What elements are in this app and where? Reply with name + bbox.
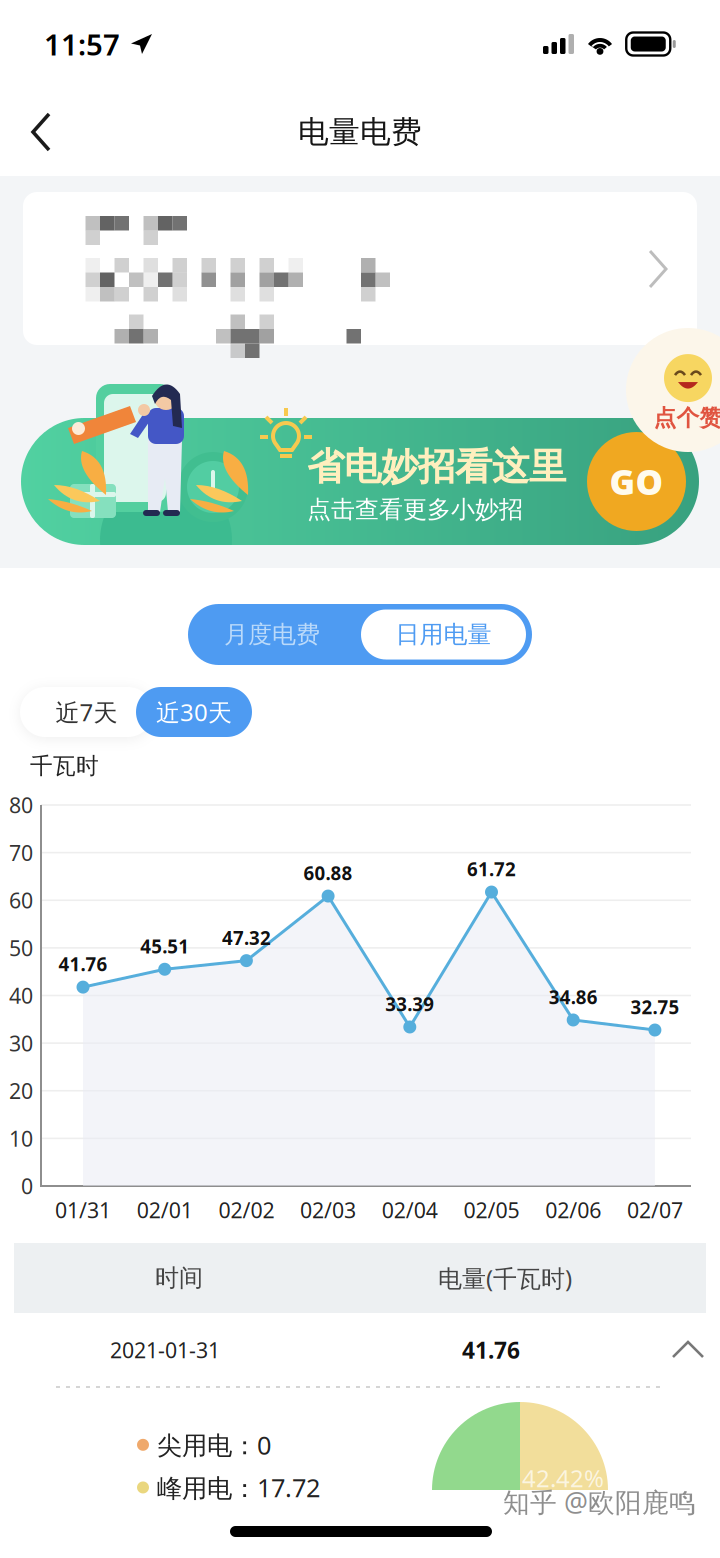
- staticText: 时间: [155, 1263, 203, 1293]
- staticText: 33.39: [385, 992, 434, 1016]
- staticText: 0: [21, 1172, 33, 1200]
- staticText: 电量电费: [298, 113, 422, 151]
- staticText: 42.42%: [522, 1462, 604, 1494]
- staticText: 省电妙招看这里: [307, 444, 566, 490]
- staticText: 尖用电：0: [157, 1428, 271, 1462]
- staticText: 02/05: [463, 1196, 519, 1224]
- staticText: 千瓦时: [30, 752, 99, 780]
- staticText: 电量(千瓦时): [438, 1262, 572, 1294]
- button[interactable]: 近7天: [20, 687, 153, 737]
- button[interactable]: 月度电费: [188, 604, 356, 665]
- staticText: 02/06: [545, 1196, 601, 1224]
- staticText: 30: [9, 1029, 33, 1057]
- button[interactable]: 省电妙招看这里: [21, 418, 699, 545]
- staticText: 32.75: [630, 995, 679, 1019]
- staticText: 20: [9, 1077, 33, 1105]
- staticText: 60.88: [304, 861, 353, 885]
- staticText: 02/07: [627, 1196, 683, 1224]
- staticText: 02/02: [218, 1196, 274, 1224]
- staticText: 02/03: [300, 1196, 356, 1224]
- staticText: 50: [9, 934, 33, 962]
- button[interactable]: 近30天: [136, 687, 252, 737]
- staticText: 知乎 @欧阳鹿鸣: [503, 1484, 696, 1519]
- button[interactable]: [23, 192, 697, 345]
- staticText: 近7天: [55, 696, 117, 728]
- button[interactable]: 2021-01-31: [0, 1314, 720, 1386]
- staticText: 峰用电：17.72: [157, 1471, 320, 1504]
- button[interactable]: 返回: [0, 93, 82, 171]
- staticText: 47.32: [222, 925, 271, 950]
- staticText: 41.76: [462, 1335, 520, 1365]
- staticText: 01/31: [55, 1196, 111, 1224]
- button[interactable]: 点个赞: [626, 328, 720, 452]
- staticText: 02/01: [137, 1196, 193, 1224]
- staticText: 61.72: [467, 857, 516, 881]
- staticText: GO: [609, 458, 663, 504]
- staticText: 近30天: [156, 696, 232, 728]
- button[interactable]: 日用电量: [361, 609, 526, 659]
- staticText: 点个赞: [653, 404, 720, 432]
- staticText: 45.51: [140, 934, 189, 959]
- staticText: 70: [9, 838, 33, 867]
- staticText: 34.86: [549, 985, 598, 1009]
- staticText: 41.76: [58, 952, 107, 976]
- staticText: 点击查看更多小妙招: [307, 495, 523, 524]
- staticText: 11:57: [44, 24, 120, 63]
- staticText: 80: [9, 791, 33, 819]
- staticText: 40: [9, 981, 33, 1010]
- staticText: 2021-01-31: [110, 1336, 220, 1364]
- staticText: 02/04: [382, 1196, 438, 1224]
- staticText: 60: [9, 886, 33, 914]
- staticText: 日用电量: [395, 620, 491, 649]
- staticText: 10: [9, 1124, 33, 1152]
- staticText: 月度电费: [224, 620, 320, 649]
